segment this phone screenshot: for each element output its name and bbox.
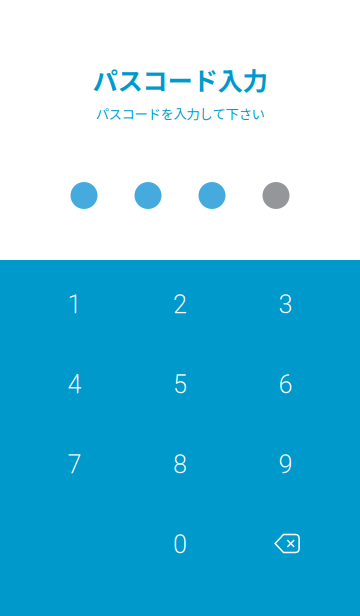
staticText: 3 xyxy=(279,290,293,319)
staticText: 5 xyxy=(173,370,187,399)
button[interactable]: 1 xyxy=(22,264,127,344)
staticText: 2 xyxy=(173,290,187,319)
staticText: 9 xyxy=(279,450,293,479)
button[interactable]: 6 xyxy=(233,344,338,424)
staticText: 0 xyxy=(173,530,187,559)
button[interactable]: 9 xyxy=(233,424,338,504)
button[interactable]: 2 xyxy=(127,264,233,344)
staticText: 6 xyxy=(279,370,293,399)
staticText: パスコード入力 xyxy=(92,61,267,98)
staticText: 7 xyxy=(67,450,81,479)
button[interactable]: 0 xyxy=(127,504,233,584)
button[interactable]: 4 xyxy=(22,344,127,424)
button[interactable]: Delete xyxy=(233,504,338,584)
button[interactable]: 5 xyxy=(127,344,233,424)
staticText: 1 xyxy=(67,290,81,319)
staticText: 4 xyxy=(67,370,81,399)
staticText: パスコードを入力して下さい xyxy=(95,104,264,123)
button[interactable]: 7 xyxy=(22,424,127,504)
staticText: 8 xyxy=(173,450,187,479)
button[interactable]: 8 xyxy=(127,424,233,504)
button[interactable]: 3 xyxy=(233,264,338,344)
